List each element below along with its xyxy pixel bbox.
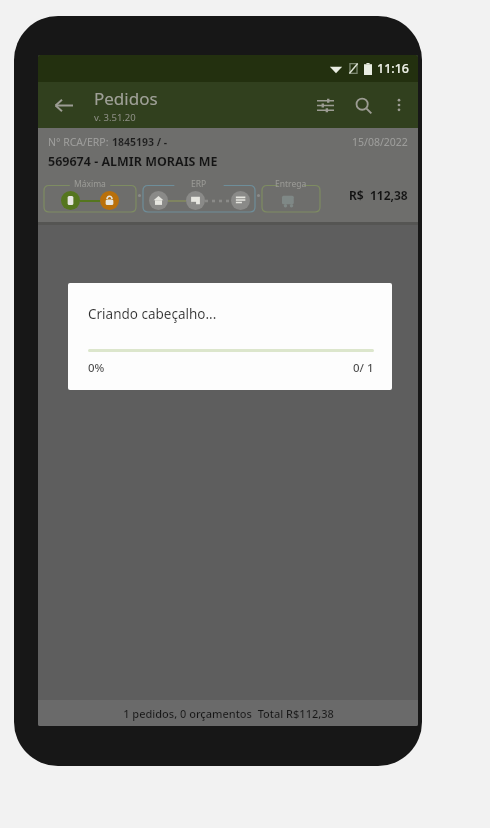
staticText: 0%	[88, 360, 105, 376]
button[interactable]: Máxima	[44, 178, 136, 212]
staticText: 1 pedidos, 0 orçamentos Total R$112,38	[123, 706, 334, 721]
staticText: 1845193 / -	[112, 135, 168, 149]
button[interactable]: ERP	[143, 178, 255, 212]
staticText: Máxima	[74, 178, 106, 190]
button[interactable]: Search	[344, 86, 382, 124]
staticText: v. 3.51.20	[94, 111, 136, 124]
staticText: Pedidos	[94, 87, 158, 110]
staticText: Criando cabeçalho...	[88, 305, 217, 323]
staticText: 0/ 1	[353, 360, 374, 376]
staticText: Entrega	[275, 178, 307, 190]
button[interactable]: More options	[382, 88, 416, 122]
staticText: R$ 112,38	[349, 187, 408, 203]
staticText: 15/08/2022	[352, 135, 408, 149]
staticText: ERP	[191, 178, 207, 190]
staticText: 569674 - ALMIR MORAIS ME	[48, 153, 218, 170]
button[interactable]: Back	[44, 86, 82, 124]
button[interactable]: Filter	[306, 86, 344, 124]
staticText: N° RCA/ERP:	[48, 135, 112, 149]
button[interactable]: Entrega	[262, 178, 320, 212]
staticText: 11:16	[377, 60, 410, 77]
